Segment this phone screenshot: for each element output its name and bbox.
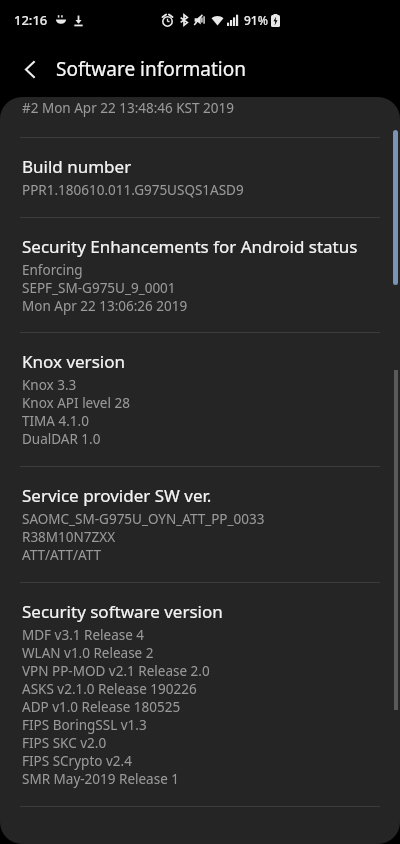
staticText: ASKS v2.1.0 Release 190226 [22, 680, 197, 698]
staticText: Service provider SW ver. [22, 484, 212, 507]
button[interactable]: Security Enhancements for Android status [0, 218, 400, 332]
staticText: FIPS BoringSSL v1.3 [22, 716, 147, 734]
staticText: 91% [244, 12, 268, 28]
button[interactable]: #2 Mon Apr 22 13:48:46 KST 2019 [0, 97, 400, 137]
staticText: DualDAR 1.0 [22, 430, 101, 448]
button[interactable]: Back [8, 47, 52, 91]
staticText: Security software version [22, 600, 223, 623]
staticText: Knox 3.3 [22, 376, 77, 394]
staticText: TIMA 4.1.0 [22, 412, 89, 430]
staticText: ATT/ATT/ATT [22, 546, 101, 564]
staticText: Knox API level 28 [22, 394, 130, 412]
button[interactable]: Knox version [0, 333, 400, 466]
staticText: PPR1.180610.011.G975USQS1ASD9 [22, 181, 244, 199]
staticText: FIPS SCrypto v2.4 [22, 752, 132, 770]
button[interactable]: Android security patch level [0, 807, 400, 844]
staticText: Software information [56, 56, 246, 82]
button[interactable]: Service provider SW ver. [0, 467, 400, 582]
staticText: WLAN v1.0 Release 2 [22, 644, 154, 662]
button[interactable]: Security software version [0, 583, 400, 806]
staticText: 12:16 [14, 11, 48, 29]
staticText: #2 Mon Apr 22 13:48:46 KST 2019 [22, 99, 234, 117]
staticText: Security Enhancements for Android status [22, 235, 358, 258]
staticText: MDF v3.1 Release 4 [22, 626, 145, 644]
staticText: SEPF_SM-G975U_9_0001 [22, 279, 176, 297]
staticText: Build number [22, 155, 132, 178]
staticText: VPN PP-MOD v2.1 Release 2.0 [22, 662, 210, 680]
staticText: ADP v1.0 Release 180525 [22, 698, 181, 716]
staticText: Enforcing [22, 261, 83, 279]
staticText: Mon Apr 22 13:06:26 2019 [22, 297, 188, 315]
staticText: R38M10N7ZXX [22, 528, 116, 546]
button[interactable]: Build number [0, 138, 400, 217]
staticText: SAOMC_SM-G975U_OYN_ATT_PP_0033 [22, 510, 265, 528]
staticText: Knox version [22, 350, 125, 373]
staticText: FIPS SKC v2.0 [22, 734, 107, 752]
staticText: SMR May-2019 Release 1 [22, 770, 180, 788]
